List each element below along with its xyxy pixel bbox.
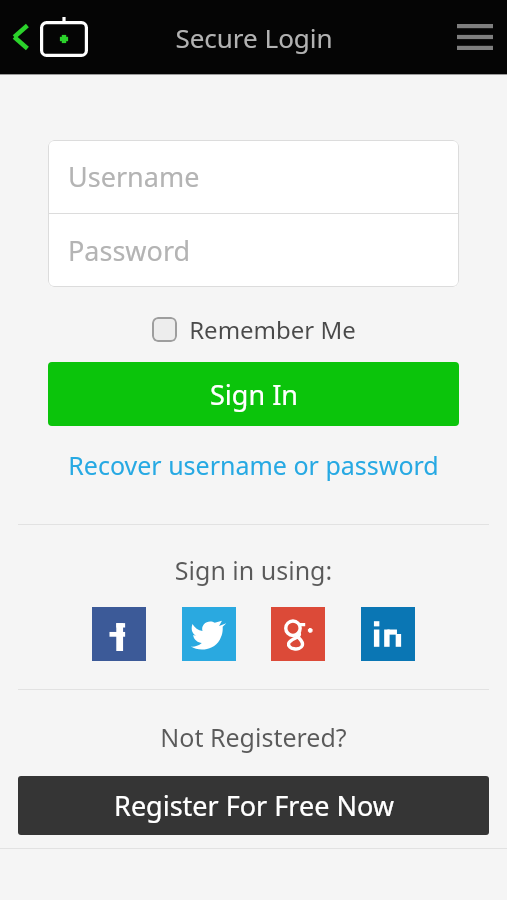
button[interactable]: Google Plus: [271, 607, 325, 661]
button[interactable]: Username: [48, 140, 459, 213]
button[interactable]: Back: [4, 20, 38, 54]
button[interactable]: Register For Free Now: [18, 776, 489, 835]
button[interactable]: Twitter: [182, 607, 236, 661]
staticText: Sign In: [210, 376, 298, 413]
staticText: Register For Free Now: [114, 787, 394, 824]
staticText: Sign in using:: [0, 553, 507, 587]
staticText: Remember Me: [189, 313, 356, 346]
button[interactable]: Remember Me: [146, 309, 362, 350]
button[interactable]: Sign In: [48, 362, 459, 426]
staticText: Username: [68, 158, 200, 195]
staticText: Recover username or password: [68, 448, 439, 482]
staticText: Password: [68, 232, 191, 269]
button[interactable]: Recover username or password: [0, 444, 507, 486]
staticText: Not Registered?: [0, 720, 507, 754]
button[interactable]: Password: [48, 214, 459, 287]
button[interactable]: LinkedIn: [361, 607, 415, 661]
button[interactable]: Home: [38, 15, 90, 59]
button[interactable]: Facebook: [92, 607, 146, 661]
button[interactable]: Menu: [451, 13, 499, 61]
staticText: Secure Login: [175, 20, 333, 55]
